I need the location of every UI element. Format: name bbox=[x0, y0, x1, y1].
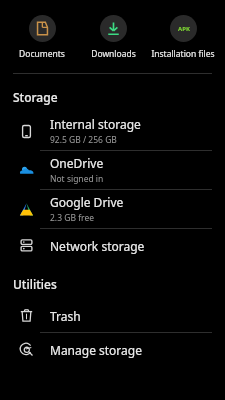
staticText: 2.3 GB free bbox=[50, 212, 94, 224]
staticText: Downloads bbox=[91, 48, 136, 60]
staticText: Documents bbox=[19, 48, 65, 60]
staticText: Storage bbox=[13, 89, 58, 105]
staticText: 92.5 GB / 256 GB bbox=[50, 134, 117, 146]
staticText: Network storage bbox=[50, 238, 145, 254]
button[interactable]: Trash bbox=[0, 299, 225, 332]
staticText: Utilities bbox=[13, 276, 57, 292]
button[interactable]: Downloads bbox=[78, 13, 148, 62]
staticText: Google Drive bbox=[50, 194, 124, 210]
button[interactable]: Network storage bbox=[0, 229, 225, 262]
button[interactable]: Documents bbox=[7, 13, 77, 62]
staticText: Manage storage bbox=[50, 342, 142, 358]
button[interactable]: APK bbox=[148, 13, 218, 62]
button[interactable]: OneDrive bbox=[0, 151, 225, 189]
staticText: OneDrive bbox=[50, 155, 104, 171]
staticText: Internal storage bbox=[50, 116, 141, 132]
staticText: Installation files bbox=[151, 48, 215, 60]
staticText: Not signed in bbox=[50, 173, 104, 185]
button[interactable]: Internal storage bbox=[0, 112, 225, 150]
staticText: Trash bbox=[50, 308, 81, 324]
staticText: APK bbox=[178, 25, 190, 33]
button[interactable]: Google Drive bbox=[0, 190, 225, 228]
button[interactable]: Manage storage bbox=[0, 333, 225, 366]
